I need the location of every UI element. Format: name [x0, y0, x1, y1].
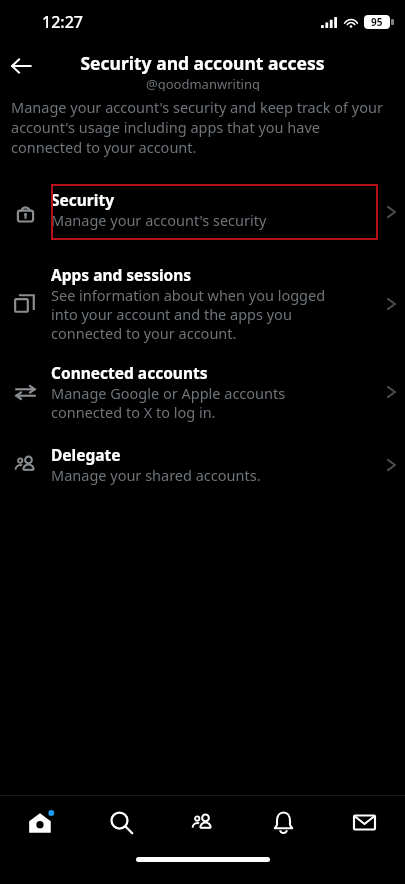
button[interactable]: Messages: [324, 796, 405, 848]
staticText: 12:27: [42, 11, 83, 33]
staticText: 95: [371, 15, 383, 29]
staticText: Delegate: [51, 444, 121, 465]
staticText: Security: [51, 189, 115, 210]
button[interactable]: Connected accounts: [0, 362, 405, 422]
staticText: Manage your account's security: [51, 210, 267, 230]
button[interactable]: Search: [81, 796, 162, 848]
staticText: Apps and sessions: [51, 264, 192, 285]
button[interactable]: Home: [0, 796, 81, 848]
button[interactable]: Back: [4, 49, 38, 83]
staticText: Manage Google or Apple accounts connecte…: [51, 383, 350, 422]
staticText: @goodmanwriting: [146, 75, 260, 91]
staticText: Manage your account's security and keep …: [11, 97, 383, 157]
button[interactable]: Notifications: [243, 796, 324, 848]
staticText: Manage your shared accounts.: [51, 465, 261, 485]
staticText: Connected accounts: [51, 362, 208, 383]
staticText: See information about when you logged in…: [51, 285, 350, 343]
button[interactable]: Apps and sessions: [0, 264, 405, 343]
button[interactable]: Communities: [162, 796, 243, 848]
staticText: Security and account access: [80, 51, 325, 75]
button[interactable]: Delegate: [0, 444, 405, 485]
button[interactable]: Security: [0, 184, 405, 240]
